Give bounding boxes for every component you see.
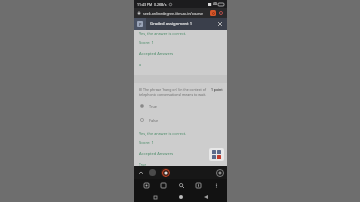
button[interactable]: True xyxy=(140,102,227,110)
button[interactable]: New tab xyxy=(215,168,224,177)
button[interactable]: Close xyxy=(215,19,225,29)
staticText: 11:43 PM 0.2KB/s xyxy=(137,2,167,7)
button[interactable]: Search xyxy=(175,179,187,191)
button[interactable]: Home xyxy=(176,192,186,202)
button[interactable]: More options xyxy=(210,179,222,191)
button[interactable]: Tab 1 xyxy=(149,169,156,176)
button[interactable]: Active tab xyxy=(161,168,170,177)
button[interactable]: Back xyxy=(201,192,211,202)
staticText: 8) The phrase 'hang on' (in the context … xyxy=(139,87,209,97)
staticText: Graded assignment 1 xyxy=(150,21,193,27)
button[interactable]: Tabs xyxy=(192,179,204,191)
staticText: P xyxy=(139,22,142,27)
staticText: seek.onlinedegree.iitm.ac.in/course xyxy=(143,11,204,16)
staticText: Score: 1 xyxy=(139,140,154,145)
button[interactable]: Recents xyxy=(150,192,160,202)
button[interactable]: Expand tabs xyxy=(137,169,145,177)
staticText: Score: 1 xyxy=(139,40,154,45)
staticText: Yes, the answer is correct. xyxy=(139,31,187,36)
staticText: a xyxy=(139,62,142,67)
button[interactable]: False xyxy=(140,116,227,124)
button[interactable]: Notifications xyxy=(218,10,224,16)
other: Secure connection xyxy=(137,11,141,15)
button[interactable]: Shield xyxy=(157,179,169,191)
staticText: 1 point xyxy=(211,87,223,92)
staticText: Accepted Answers xyxy=(139,51,174,56)
staticText: True xyxy=(139,162,147,166)
button[interactable]: Extension xyxy=(210,10,216,16)
staticText: False xyxy=(149,118,159,123)
button[interactable]: Home xyxy=(140,179,152,191)
staticText: 4G xyxy=(213,2,217,6)
staticText: True xyxy=(149,104,157,109)
button[interactable]: Question palette xyxy=(209,148,224,161)
staticText: Yes, the answer is correct. xyxy=(139,131,187,136)
staticText: Accepted Answers xyxy=(139,151,174,156)
